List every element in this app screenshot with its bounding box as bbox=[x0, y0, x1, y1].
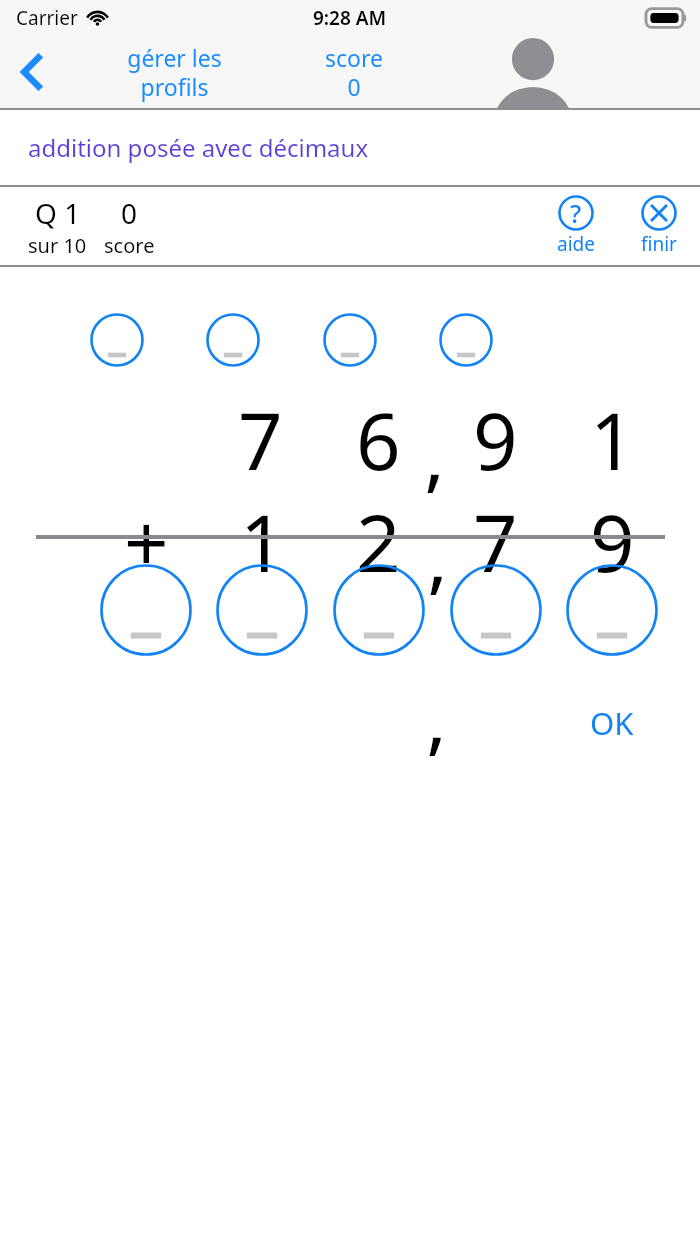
button[interactable]: retenue bbox=[90, 313, 144, 367]
button[interactable]: retenue bbox=[323, 313, 377, 367]
staticText: 6 bbox=[356, 387, 401, 479]
staticText: score bbox=[104, 232, 155, 259]
button[interactable]: chiffre réponse bbox=[566, 564, 658, 656]
button[interactable]: retenue bbox=[206, 313, 260, 367]
staticText: finir bbox=[641, 231, 677, 257]
staticText: ? bbox=[570, 196, 582, 230]
staticText: sur 10 bbox=[28, 232, 87, 259]
button[interactable]: Retour bbox=[0, 36, 66, 108]
button[interactable]: addition posée avec décimaux bbox=[0, 110, 700, 185]
staticText: 7 bbox=[473, 489, 518, 581]
staticText: gérer les profils bbox=[127, 42, 222, 103]
staticText: , bbox=[424, 401, 445, 493]
button[interactable]: finir bbox=[625, 187, 693, 265]
button[interactable]: OK bbox=[572, 695, 652, 751]
staticText: 9:28 AM bbox=[313, 5, 387, 31]
button[interactable]: Profil bbox=[477, 36, 589, 108]
staticText: aide bbox=[557, 231, 595, 257]
staticText: 1 bbox=[590, 387, 635, 479]
button[interactable]: ? bbox=[543, 187, 609, 265]
button[interactable]: retenue bbox=[439, 313, 493, 367]
staticText: , bbox=[426, 664, 447, 756]
staticText: Q 1 bbox=[35, 194, 81, 232]
staticText: 7 bbox=[238, 387, 283, 479]
staticText: , bbox=[427, 503, 448, 595]
button[interactable]: chiffre réponse bbox=[100, 564, 192, 656]
button[interactable]: score 0 bbox=[289, 36, 419, 108]
staticText: addition posée avec décimaux bbox=[28, 131, 369, 164]
button[interactable]: chiffre réponse bbox=[216, 564, 308, 656]
staticText: 0 bbox=[121, 194, 138, 232]
staticText: OK bbox=[590, 702, 634, 744]
staticText: 2 bbox=[356, 489, 401, 581]
staticText: Carrier bbox=[16, 5, 78, 31]
staticText: score 0 bbox=[325, 42, 383, 103]
button[interactable]: gérer les profils bbox=[94, 36, 254, 108]
staticText: 1 bbox=[240, 489, 285, 581]
staticText: 9 bbox=[473, 387, 518, 479]
button[interactable]: chiffre réponse bbox=[333, 564, 425, 656]
button[interactable]: chiffre réponse bbox=[450, 564, 542, 656]
staticText: 9 bbox=[590, 489, 635, 581]
staticText: + bbox=[124, 489, 169, 581]
